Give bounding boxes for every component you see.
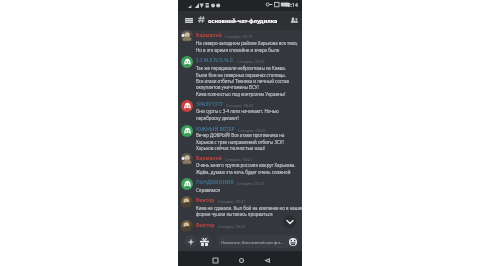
staticText: Ждём, думаю эта ночь будет очень сложной [196, 169, 291, 175]
staticText: Были бои на северных окраинах столицы. [196, 72, 286, 78]
staticText: S.I.M.E.N.O.N.G [196, 57, 234, 64]
button[interactable]: Recent apps [209, 254, 221, 266]
staticText: На северо-западном районе Харькова все т… [196, 40, 298, 46]
staticText: оккупантов уничтожены ВСУ! [196, 84, 259, 90]
staticText: Вечер ДОБРЫЙ! Все атаки противника на [196, 132, 285, 138]
button[interactable]: User avatar [181, 56, 193, 68]
button[interactable]: User avatar [181, 178, 193, 190]
staticText: 12:14 [285, 2, 298, 9]
staticText: Так же передавали небронтимы из Киева. [196, 65, 286, 71]
button[interactable]: User avatar [181, 125, 193, 137]
staticText: Бармалей [196, 32, 222, 39]
button[interactable]: User avatar [181, 100, 193, 112]
staticText: Сегодня, 00:22 [218, 224, 246, 229]
staticText: Харьков с трех направлений отбиты ЗСУ! [196, 139, 284, 145]
staticText: ЮЖНЫЙ ВЕТЕР [196, 126, 235, 133]
staticText: основной-чат-флудилка [208, 17, 278, 25]
staticText: Сегодня, 00:21 [225, 157, 253, 162]
staticText: форме чушки пытались прорваться [196, 211, 273, 217]
staticText: Бармалей [196, 155, 222, 162]
staticText: Сегодня, 00:20 [226, 103, 254, 108]
staticText: переброску делают! [196, 115, 239, 121]
staticText: Сегодня, 00:21 [237, 181, 265, 186]
staticText: Сегодня, 00:21 [218, 199, 246, 204]
staticText: Киев полностью под контролем Украины! [196, 91, 286, 97]
staticText: Справимся [196, 187, 220, 193]
button[interactable]: Написать #основной-чат-фл... [217, 235, 299, 248]
staticText: Сегодня, 00:19 [225, 34, 253, 39]
staticText: Они сургы с 3-4 логи начинают. Ночью [196, 108, 279, 114]
button[interactable]: User avatar [181, 30, 193, 42]
staticText: Сегодня, 00:20 [238, 128, 266, 133]
button[interactable]: Open navigation drawer [182, 14, 195, 27]
staticText: ПАНДЕМОНИЯ [196, 179, 234, 186]
staticText: Сегодня, 00:20 [237, 59, 265, 64]
button[interactable]: Jump to present [283, 215, 296, 228]
staticText: Очень много трупов россиян вокруг Харько… [196, 162, 296, 168]
staticText: Но в это время спокойно и вчера было [196, 47, 280, 53]
staticText: Киев не сдавали. Был бой на клепенке но … [196, 205, 302, 211]
button[interactable]: Add attachment [184, 235, 197, 248]
button[interactable]: User avatar [181, 153, 193, 165]
button[interactable]: Send a gift [198, 235, 211, 248]
staticText: Виктор [196, 197, 215, 204]
button[interactable]: User avatar [181, 196, 193, 208]
button[interactable]: User avatar [181, 220, 193, 232]
staticText: Виктор [196, 222, 215, 229]
button[interactable]: Back [261, 254, 273, 266]
staticText: Харьков сейчас полностью наш! [196, 145, 265, 151]
staticText: ЗРАЗУ1317 [196, 101, 223, 108]
staticText: Написать #основной-чат-фл... [221, 239, 284, 245]
button[interactable]: Home [235, 254, 247, 266]
button[interactable]: Members [287, 14, 300, 27]
staticText: Все атаки отбиты! Техника и личный соста… [196, 78, 289, 84]
